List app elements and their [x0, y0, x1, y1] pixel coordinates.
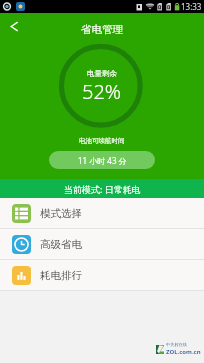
staticText: 52% — [82, 78, 122, 105]
staticText: 13:33 — [181, 1, 202, 12]
staticText: 中关村在线 — [166, 342, 187, 347]
button[interactable]: 高级省电 — [0, 229, 204, 259]
staticText: 电池可续航时间 — [79, 137, 125, 145]
staticText: 当前模式: 日常耗电 — [64, 183, 141, 195]
staticText: 省电管理 — [81, 23, 123, 36]
button[interactable]: Back — [0, 14, 28, 42]
button[interactable]: 当前模式: 日常耗电 — [0, 179, 204, 198]
staticText: 11 小时 43 分 — [78, 155, 127, 166]
button[interactable]: 模式选择 — [0, 198, 204, 228]
staticText: 耗电排行 — [40, 269, 82, 282]
button[interactable]: 耗电排行 — [0, 260, 204, 290]
staticText: ZOL.com.cn — [166, 348, 201, 356]
staticText: 模式选择 — [40, 207, 82, 220]
staticText: 高级省电 — [40, 238, 82, 251]
button[interactable]: 11 小时 43 分 — [49, 151, 155, 169]
staticText: 电量剩余 — [87, 69, 117, 78]
